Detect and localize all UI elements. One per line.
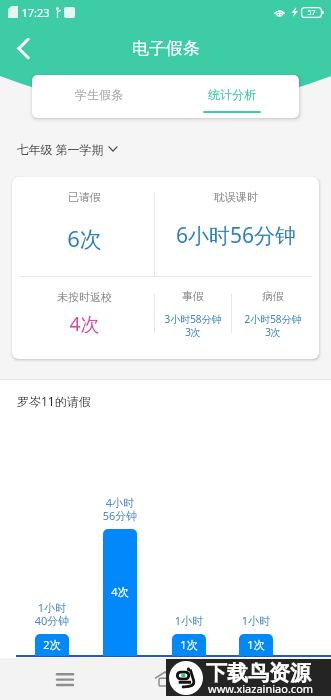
staticText: www.xiazainiao.com — [208, 681, 314, 696]
button[interactable]: Recent apps — [20, 658, 110, 700]
button[interactable]: Back — [6, 31, 40, 65]
staticText: 1次 — [172, 637, 206, 652]
button[interactable]: Back — [225, 658, 315, 700]
button[interactable]: 七年级 第一学期 — [16, 139, 117, 159]
staticText: 事假 — [154, 289, 232, 303]
staticText: 未按时返校 — [14, 290, 155, 304]
staticText: 统计分析 — [208, 87, 256, 102]
button[interactable]: 统计分析 — [165, 75, 299, 118]
staticText: 4次 — [14, 311, 155, 337]
staticText: 七年级 第一学期 — [16, 141, 104, 157]
staticText: 学生假条 — [75, 87, 123, 102]
staticText: 4次 — [103, 584, 137, 599]
staticText: 已请假 — [14, 190, 155, 204]
staticText: 4小时 56分钟 — [80, 495, 160, 523]
staticText: 1小时 — [149, 613, 229, 628]
staticText: 病假 — [230, 289, 316, 303]
staticText: 17:23 — [21, 5, 50, 20]
staticText: 1小时 — [216, 613, 296, 628]
staticText: 耽误课时 — [155, 190, 317, 204]
staticText: 1次 — [239, 637, 273, 652]
staticText: 2次 — [35, 637, 69, 652]
button[interactable]: Home — [120, 658, 210, 700]
staticText: 2小时58分钟 3次 — [230, 312, 316, 339]
button[interactable]: 学生假条 — [32, 75, 165, 118]
staticText: 6小时56分钟 — [155, 221, 317, 250]
staticText: 电子假条 — [132, 38, 200, 59]
staticText: 1小时 40分钟 — [12, 600, 92, 628]
staticText: 3小时58分钟 3次 — [154, 312, 232, 339]
staticText: 下载鸟资源 — [206, 660, 311, 686]
staticText: 6次 — [14, 223, 155, 253]
staticText: 罗岑11的请假 — [17, 393, 91, 409]
staticText: 57 — [307, 8, 316, 18]
